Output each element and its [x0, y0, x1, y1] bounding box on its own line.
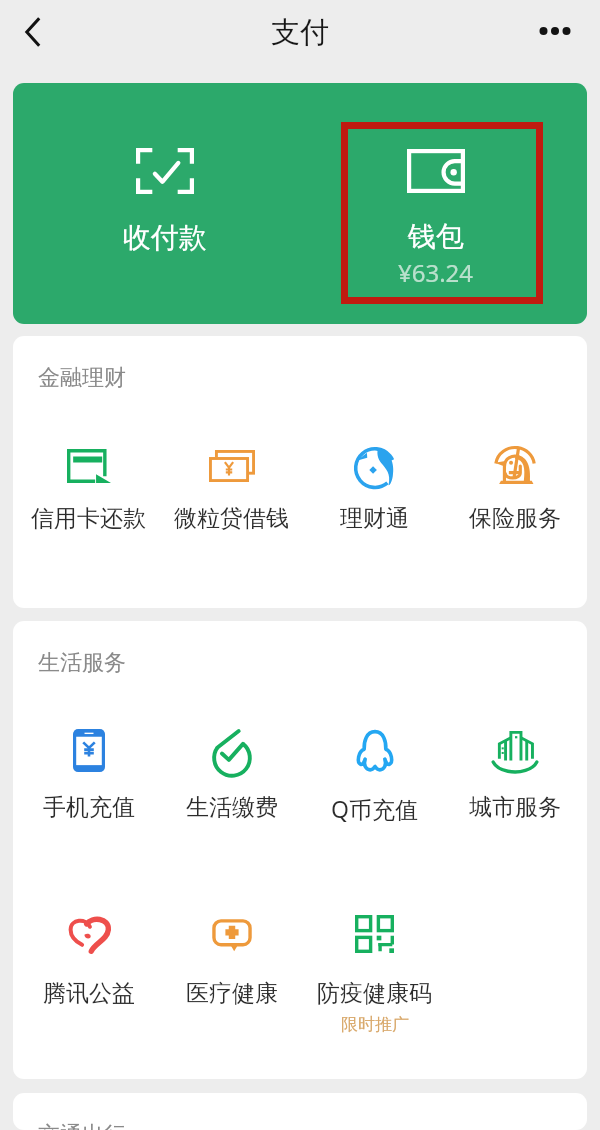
button[interactable]: 信用卡还款	[17, 442, 160, 548]
button[interactable]: 理财通	[303, 442, 446, 548]
staticText: 理财通	[340, 504, 409, 533]
button[interactable]: 手机充值	[17, 731, 160, 837]
staticText: 防疫健康码	[317, 979, 432, 1008]
button[interactable]: 城市服务	[446, 731, 583, 837]
staticText: 收付款	[123, 220, 207, 255]
staticText: 限时推广	[341, 1014, 409, 1035]
button[interactable]: 收付款	[26, 83, 303, 324]
button[interactable]: Q币充值	[303, 731, 446, 837]
button[interactable]: Back	[6, 4, 62, 60]
staticText: 钱包	[408, 219, 464, 254]
button[interactable]: 防疫健康码	[303, 917, 446, 1023]
staticText: Q币充值	[331, 793, 418, 824]
staticText: 信用卡还款	[31, 504, 146, 533]
button[interactable]: 腾讯公益	[17, 917, 160, 1023]
staticText: 手机充值	[43, 793, 135, 822]
staticText: 城市服务	[469, 793, 561, 822]
button[interactable]: 微粒贷借钱	[160, 442, 303, 548]
staticText: 支付	[271, 14, 329, 51]
staticText: 生活服务	[38, 649, 126, 677]
button[interactable]: 医疗健康	[160, 917, 303, 1023]
staticText: 微粒贷借钱	[174, 504, 289, 533]
staticText: 生活缴费	[186, 793, 278, 822]
staticText: ¥63.24	[398, 256, 474, 289]
staticText: 保险服务	[469, 504, 561, 533]
button[interactable]: 钱包	[297, 83, 574, 324]
staticText: 金融理财	[38, 364, 126, 392]
button[interactable]: More options	[527, 2, 583, 58]
button[interactable]: 生活缴费	[160, 731, 303, 837]
button[interactable]: 保险服务	[446, 442, 583, 548]
staticText: 交通出行	[38, 1121, 126, 1130]
staticText: 医疗健康	[186, 979, 278, 1008]
staticText: 腾讯公益	[43, 979, 135, 1008]
